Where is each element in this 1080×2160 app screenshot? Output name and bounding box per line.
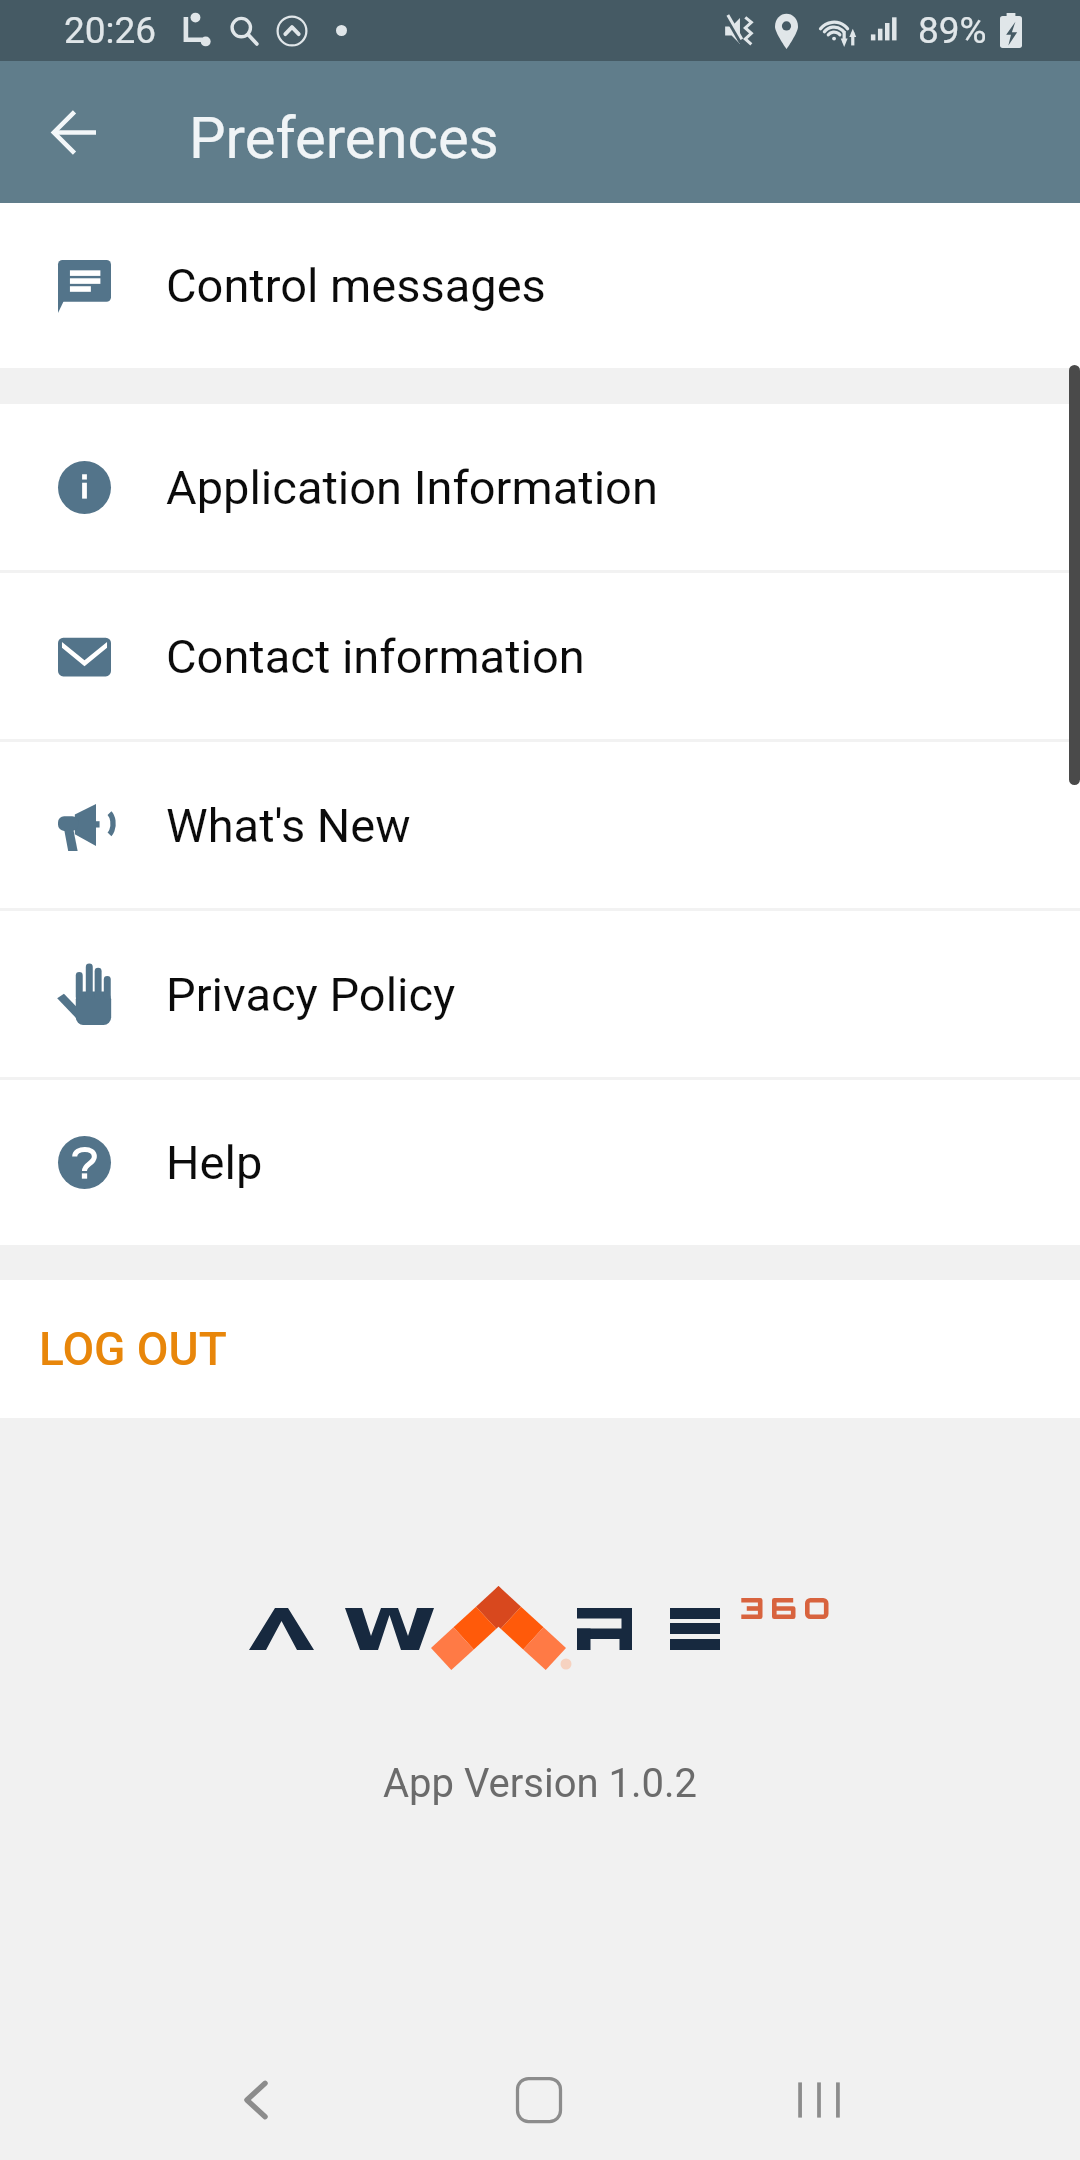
- button[interactable]: Contact information: [0, 573, 1080, 739]
- button[interactable]: Application Information: [0, 404, 1080, 570]
- button[interactable]: What's New: [0, 742, 1080, 908]
- staticText: Privacy Policy: [166, 967, 456, 1022]
- staticText: Preferences: [189, 104, 499, 172]
- staticText: 89%: [918, 9, 987, 52]
- button[interactable]: Privacy Policy: [0, 911, 1080, 1077]
- button[interactable]: Back: [196, 2040, 316, 2160]
- staticText: Control messages: [166, 258, 546, 313]
- button[interactable]: Recent apps: [759, 2040, 879, 2160]
- staticText: LOG OUT: [39, 1322, 227, 1376]
- button[interactable]: Control messages: [0, 203, 1080, 368]
- staticText: Contact information: [166, 629, 585, 684]
- button[interactable]: Help: [0, 1080, 1080, 1245]
- staticText: What's New: [166, 798, 411, 853]
- button[interactable]: Navigate up: [22, 80, 126, 184]
- staticText: Help: [166, 1135, 263, 1190]
- staticText: 20:26: [64, 9, 157, 52]
- staticText: Application Information: [166, 460, 658, 515]
- button[interactable]: Home: [479, 2040, 599, 2160]
- button[interactable]: LOG OUT: [0, 1280, 1080, 1418]
- staticText: App Version 1.0.2: [383, 1760, 698, 1807]
